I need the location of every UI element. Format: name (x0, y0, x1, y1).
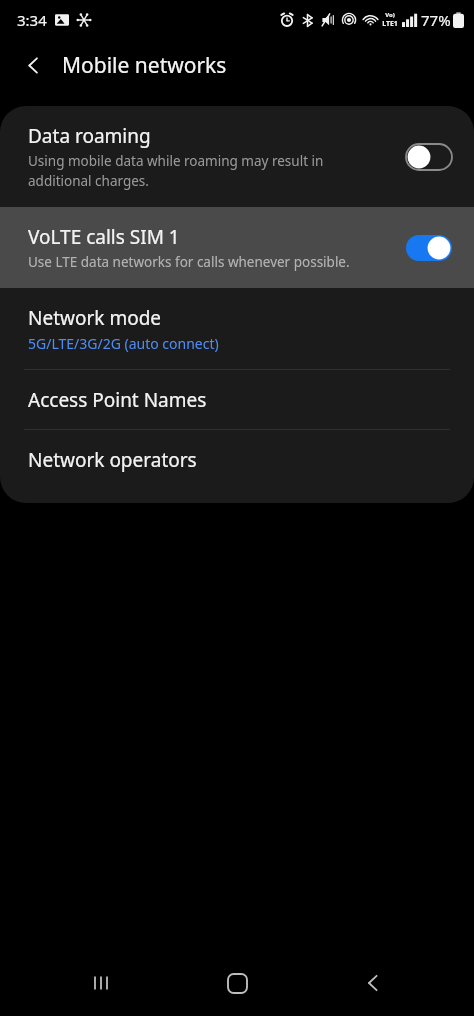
staticText: Network operators (28, 447, 197, 473)
button[interactable]: Access Point Names (0, 370, 474, 429)
staticText: Network mode (28, 305, 162, 331)
staticText: Data roaming (28, 123, 151, 149)
staticText: VoLTE calls SIM 1 (28, 224, 180, 250)
button[interactable]: Back (338, 950, 408, 1016)
button[interactable]: Data roaming (0, 106, 474, 207)
staticText: Use LTE data networks for calls whenever… (28, 253, 350, 271)
button[interactable]: Recents (66, 950, 136, 1016)
staticText: Mobile networks (62, 51, 227, 80)
button[interactable]: VoLTE calls SIM 1 (0, 207, 474, 288)
button[interactable]: Off (406, 144, 452, 170)
button[interactable]: Back (12, 44, 54, 86)
staticText: LTE1 (382, 19, 398, 29)
button[interactable]: Home (202, 950, 272, 1016)
button[interactable]: Network mode (0, 288, 474, 369)
staticText: 5G/LTE/3G/2G (auto connect) (28, 334, 219, 353)
staticText: Access Point Names (28, 387, 207, 413)
staticText: Vo) (385, 11, 395, 19)
button[interactable]: On (406, 235, 452, 261)
staticText: 77% (421, 10, 451, 30)
staticText: Using mobile data while roaming may resu… (28, 152, 324, 190)
staticText: 3:34 (17, 10, 47, 30)
button[interactable]: Network operators (0, 430, 474, 489)
